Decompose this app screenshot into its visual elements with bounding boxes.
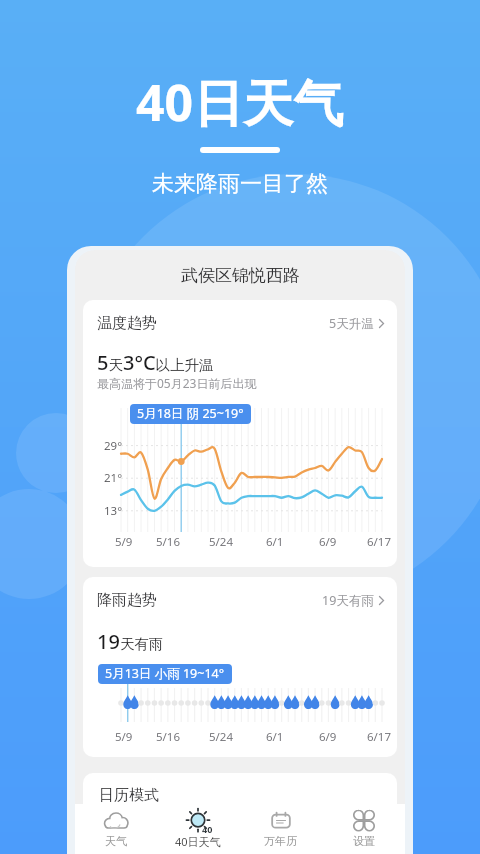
staticText: 5/16 <box>156 729 181 745</box>
staticText: 6/9 <box>319 729 337 745</box>
staticText: 未来降雨一目了然 <box>152 170 328 198</box>
staticText: 5天3°C以上升温 <box>97 349 214 376</box>
staticText: 5/24 <box>209 729 234 745</box>
button[interactable]: 40 day weather <box>157 804 239 854</box>
button[interactable]: 日历模式 <box>83 773 397 804</box>
staticText: 5/9 <box>115 534 133 550</box>
button[interactable]: 温度趋势 <box>83 308 397 339</box>
button[interactable]: Settings <box>322 804 405 854</box>
staticText: 温度趋势 <box>97 314 157 333</box>
staticText: 5/16 <box>156 534 181 550</box>
staticText: 天气 <box>105 834 127 848</box>
staticText: 5天升温 <box>329 315 374 332</box>
staticText: 40日天气 <box>175 834 221 849</box>
staticText: 6/9 <box>319 534 337 550</box>
staticText: 40日天气 <box>136 68 344 136</box>
staticText: 武侯区锦悦西路 <box>181 265 300 286</box>
button[interactable]: Calendar <box>239 804 322 854</box>
staticText: 19天有雨 <box>322 592 374 609</box>
button[interactable]: Weather <box>75 804 157 854</box>
staticText: 6/17 <box>367 534 392 550</box>
button[interactable]: 降雨趋势 <box>83 585 397 616</box>
staticText: 29° <box>104 438 123 454</box>
staticText: 设置 <box>353 834 375 848</box>
staticText: 5月13日 小雨 19~14° <box>105 665 225 682</box>
staticText: 40 <box>202 823 213 835</box>
staticText: 6/1 <box>266 729 284 745</box>
staticText: 13° <box>104 503 123 519</box>
staticText: 5/24 <box>209 534 234 550</box>
staticText: 万年历 <box>264 834 297 848</box>
staticText: 最高温将于05月23日前后出现 <box>97 375 257 391</box>
staticText: 降雨趋势 <box>97 591 157 610</box>
staticText: 5/9 <box>115 729 133 745</box>
staticText: 6/17 <box>367 729 392 745</box>
staticText: 6/1 <box>266 534 284 550</box>
staticText: 日历模式 <box>99 786 159 804</box>
staticText: 5月18日 阴 25~19° <box>137 405 244 422</box>
staticText: 19天有雨 <box>97 628 164 655</box>
staticText: 21° <box>104 470 123 486</box>
